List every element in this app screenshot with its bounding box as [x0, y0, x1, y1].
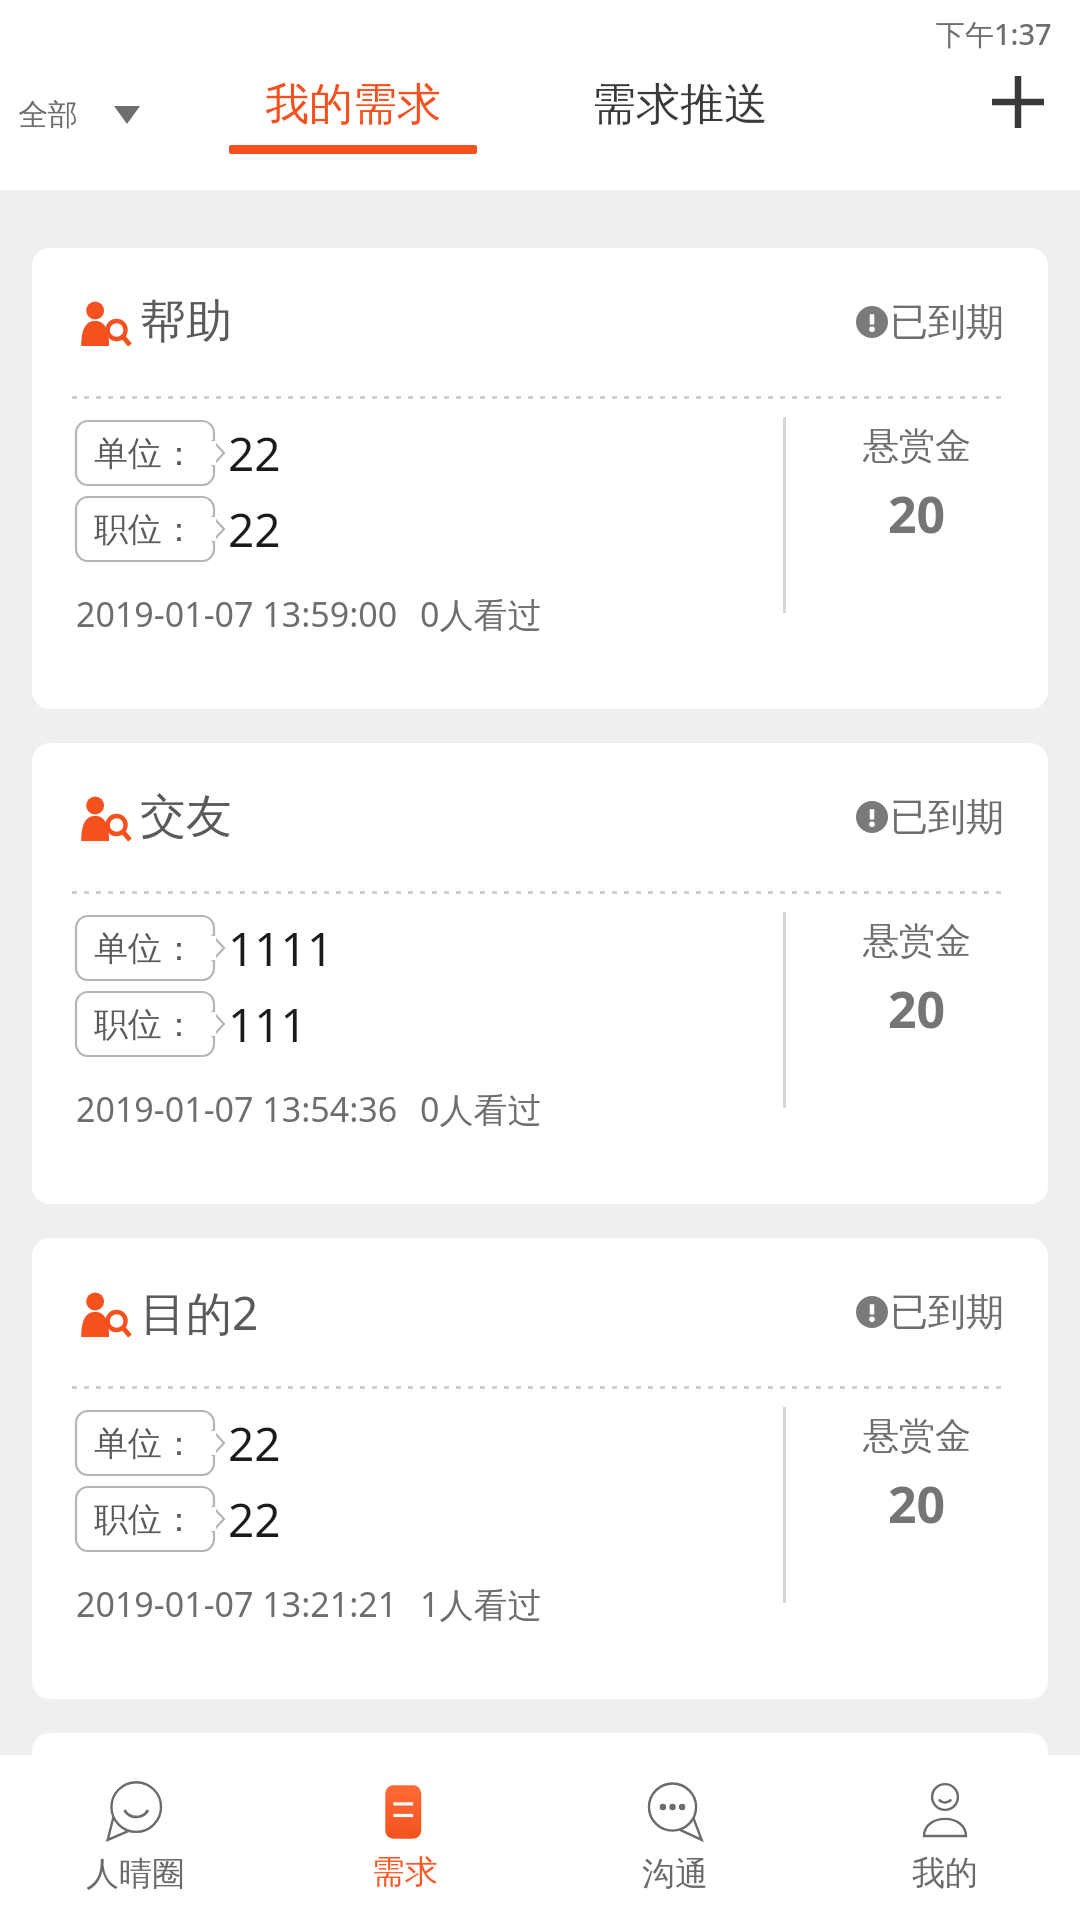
button[interactable]: 沟通: [540, 1755, 810, 1920]
staticText: 22: [228, 1412, 281, 1475]
staticText: 悬赏金: [863, 918, 971, 963]
button[interactable]: 我的需求: [222, 0, 484, 190]
staticText: 已到期: [890, 298, 1004, 346]
staticText: 0人看过: [420, 591, 542, 637]
button[interactable]: 全部: [12, 88, 146, 142]
staticText: 悬赏金: [863, 1413, 971, 1458]
staticText: 22: [228, 422, 281, 485]
button[interactable]: 目的2: [32, 1238, 1048, 1699]
staticText: 2019-01-07 13:21:21: [76, 1581, 398, 1627]
staticText: 需求: [372, 1851, 438, 1893]
staticText: 20: [888, 1470, 946, 1538]
button[interactable]: 需求: [270, 1755, 540, 1920]
staticText: 单位：: [94, 927, 196, 970]
staticText: 全部: [18, 96, 78, 134]
staticText: 交友: [140, 788, 232, 846]
button[interactable]: 人晴圈: [0, 1755, 270, 1920]
button[interactable]: 需求推送: [560, 0, 800, 190]
staticText: 沟通: [642, 1853, 708, 1895]
staticText: 1人看过: [420, 1581, 542, 1627]
staticText: 0人看过: [420, 1086, 542, 1132]
staticText: 职位：: [94, 508, 196, 551]
button[interactable]: 帮助: [32, 248, 1048, 709]
staticText: 22: [228, 1488, 281, 1551]
staticText: 职位：: [94, 1498, 196, 1541]
staticText: 我的: [912, 1852, 978, 1894]
staticText: 20: [888, 480, 946, 548]
staticText: 2019-01-07 13:54:36: [76, 1086, 398, 1132]
staticText: 目的2: [140, 1281, 259, 1344]
staticText: 单位：: [94, 432, 196, 475]
staticText: 20: [888, 975, 946, 1043]
staticText: 1111: [228, 917, 334, 980]
staticText: 111: [228, 993, 307, 1056]
staticText: 下午1:37: [936, 14, 1052, 54]
button[interactable]: 交友: [32, 743, 1048, 1204]
staticText: 已到期: [890, 793, 1004, 841]
staticText: 我的需求: [265, 77, 441, 132]
staticText: 帮助: [140, 293, 232, 351]
button[interactable]: Add: [972, 56, 1064, 148]
staticText: 人晴圈: [86, 1853, 185, 1895]
staticText: 职位：: [94, 1003, 196, 1046]
button[interactable]: 我的: [810, 1755, 1080, 1920]
staticText: 已到期: [890, 1288, 1004, 1336]
staticText: 22: [228, 498, 281, 561]
staticText: 悬赏金: [863, 423, 971, 468]
staticText: 2019-01-07 13:59:00: [76, 591, 398, 637]
staticText: 需求推送: [592, 77, 768, 132]
staticText: 单位：: [94, 1422, 196, 1465]
